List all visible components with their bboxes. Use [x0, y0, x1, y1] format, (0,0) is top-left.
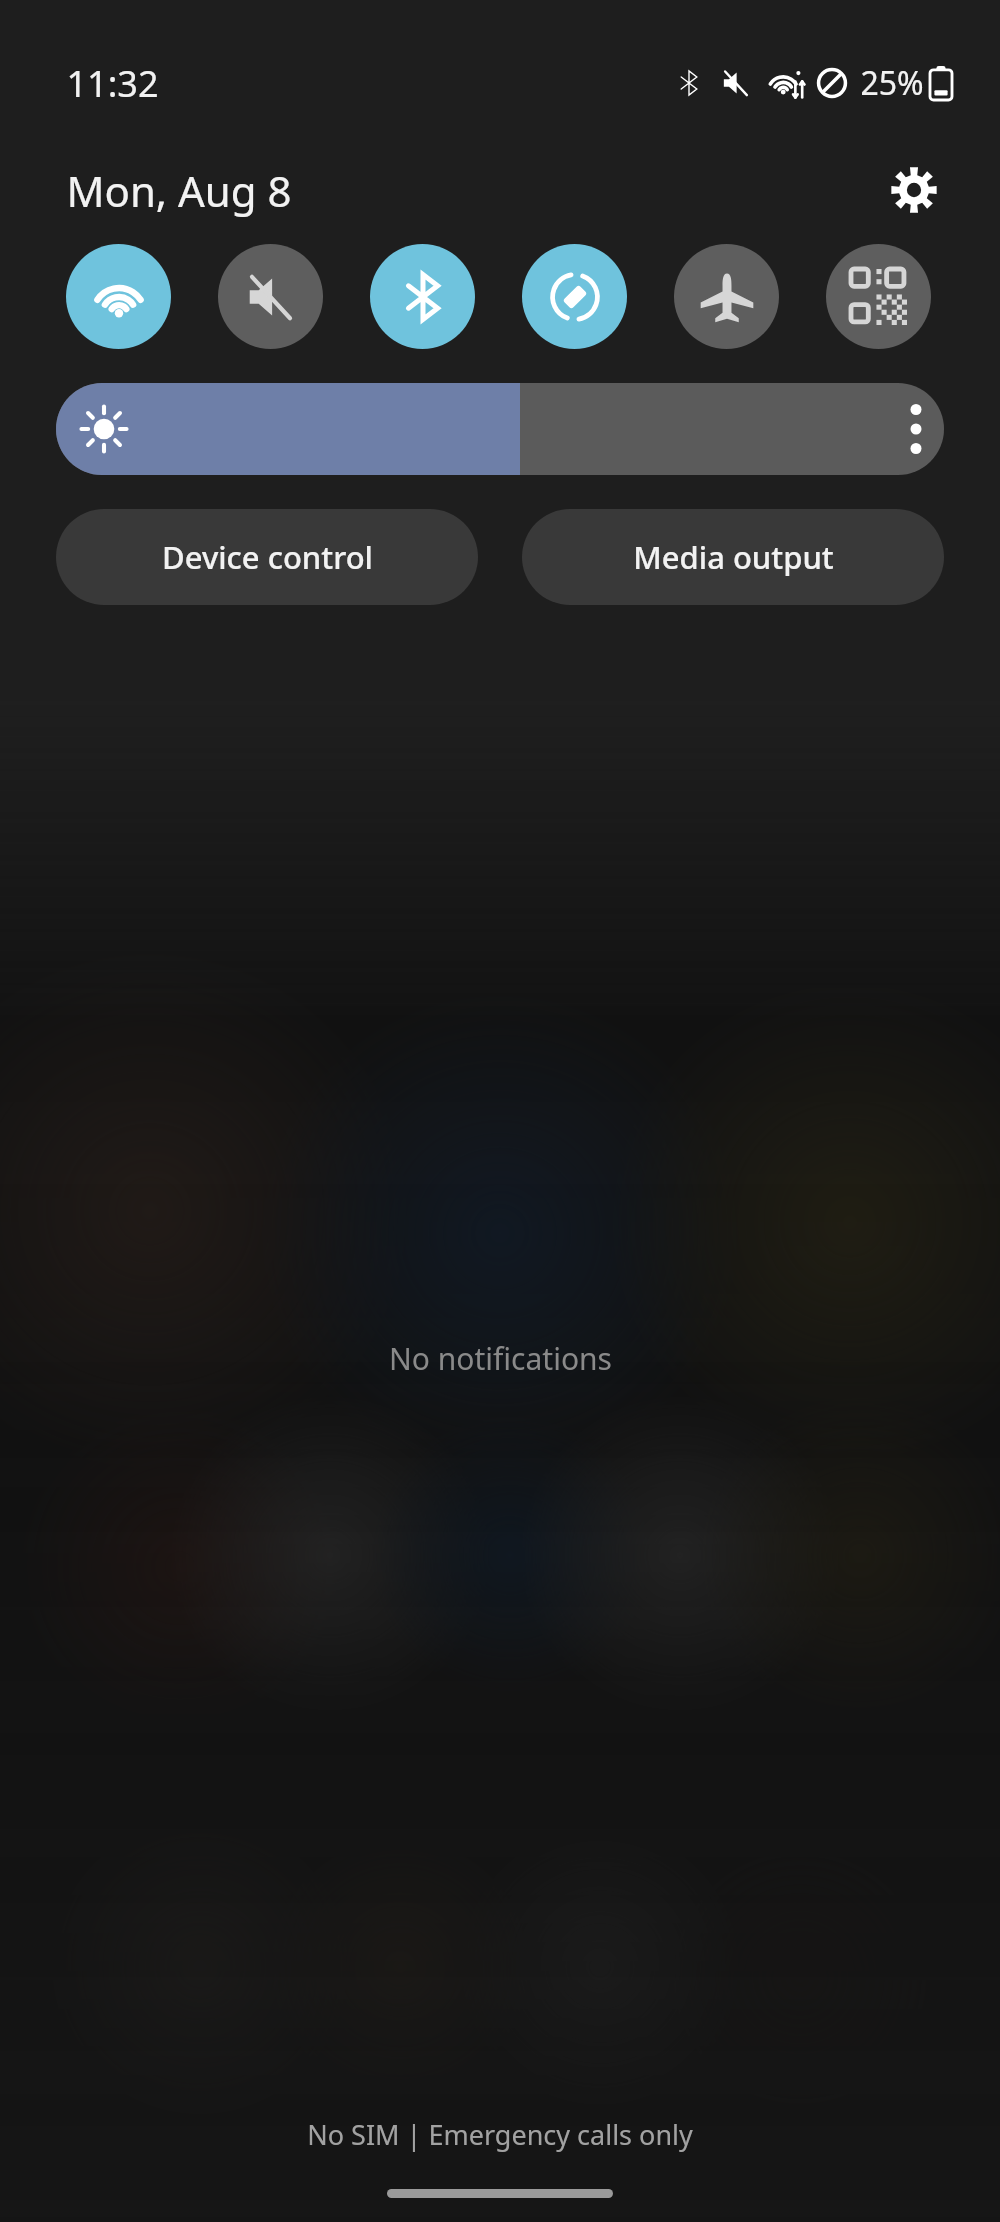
button[interactable]: Airplane mode: [674, 244, 779, 349]
staticText: Device control: [162, 536, 373, 578]
staticText: No notifications: [389, 1338, 612, 1379]
button[interactable]: Wi-Fi: [66, 244, 171, 349]
staticText: 25%: [860, 61, 924, 105]
button[interactable]: Brightness: [56, 383, 944, 475]
button[interactable]: Auto rotate: [522, 244, 627, 349]
button[interactable]: Media output: [522, 509, 944, 605]
button[interactable]: QR scanner: [826, 244, 931, 349]
staticText: No SIM | Emergency calls only: [307, 2116, 693, 2153]
button[interactable]: Device control: [56, 509, 478, 605]
staticText: 11:32: [66, 59, 159, 108]
button[interactable]: Bluetooth: [370, 244, 475, 349]
button[interactable]: Settings: [876, 152, 952, 228]
button[interactable]: Mute: [218, 244, 323, 349]
staticText: Media output: [633, 536, 834, 578]
staticText: Mon, Aug 8: [66, 162, 292, 219]
